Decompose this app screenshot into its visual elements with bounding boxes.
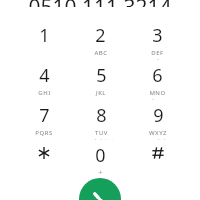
button[interactable]: 9 <box>129 100 186 140</box>
staticText: GHI <box>38 89 51 97</box>
staticText: 5 <box>96 63 107 88</box>
staticText: MNO <box>149 89 166 97</box>
staticText: TUV <box>95 129 108 137</box>
button[interactable]: 7 <box>15 100 72 140</box>
staticText: 0510 111 3214 <box>28 0 172 7</box>
staticText: JKL <box>96 89 106 97</box>
staticText: DEF <box>151 49 164 57</box>
staticText: 6 <box>152 63 163 88</box>
staticText: ABC <box>94 49 108 57</box>
staticText: + <box>98 168 103 178</box>
button[interactable]: 4 <box>15 60 72 100</box>
button[interactable]: 1 <box>15 20 72 60</box>
button[interactable]: 6 <box>129 60 186 100</box>
staticText: ط ظ ع غ <box>148 138 168 140</box>
staticText: 8 <box>96 103 107 128</box>
button[interactable]: Call <box>79 178 121 200</box>
button[interactable]: Star <box>15 140 72 180</box>
staticText: 1 <box>39 23 50 48</box>
staticText: 4 <box>39 63 50 88</box>
staticText: PQRS <box>35 129 53 137</box>
staticText: WXYZ <box>149 129 167 137</box>
staticText: 2 <box>95 23 106 48</box>
staticText: 3 <box>152 23 163 48</box>
staticText: 0 <box>95 143 106 168</box>
staticText: ف ق ك ل م <box>88 138 114 140</box>
button[interactable]: 0 <box>72 140 129 180</box>
staticText: ا <box>157 58 159 60</box>
staticText: 9 <box>153 103 164 128</box>
button[interactable]: 2 <box>72 20 129 60</box>
button[interactable]: Pound <box>129 140 186 180</box>
button[interactable]: 0510 111 3214 <box>0 0 200 14</box>
staticText: ع غ ظ <box>151 98 165 100</box>
button[interactable]: 3 <box>129 20 186 60</box>
staticText: 7 <box>39 103 50 128</box>
button[interactable]: 8 <box>72 100 129 140</box>
button[interactable]: 5 <box>72 60 129 100</box>
